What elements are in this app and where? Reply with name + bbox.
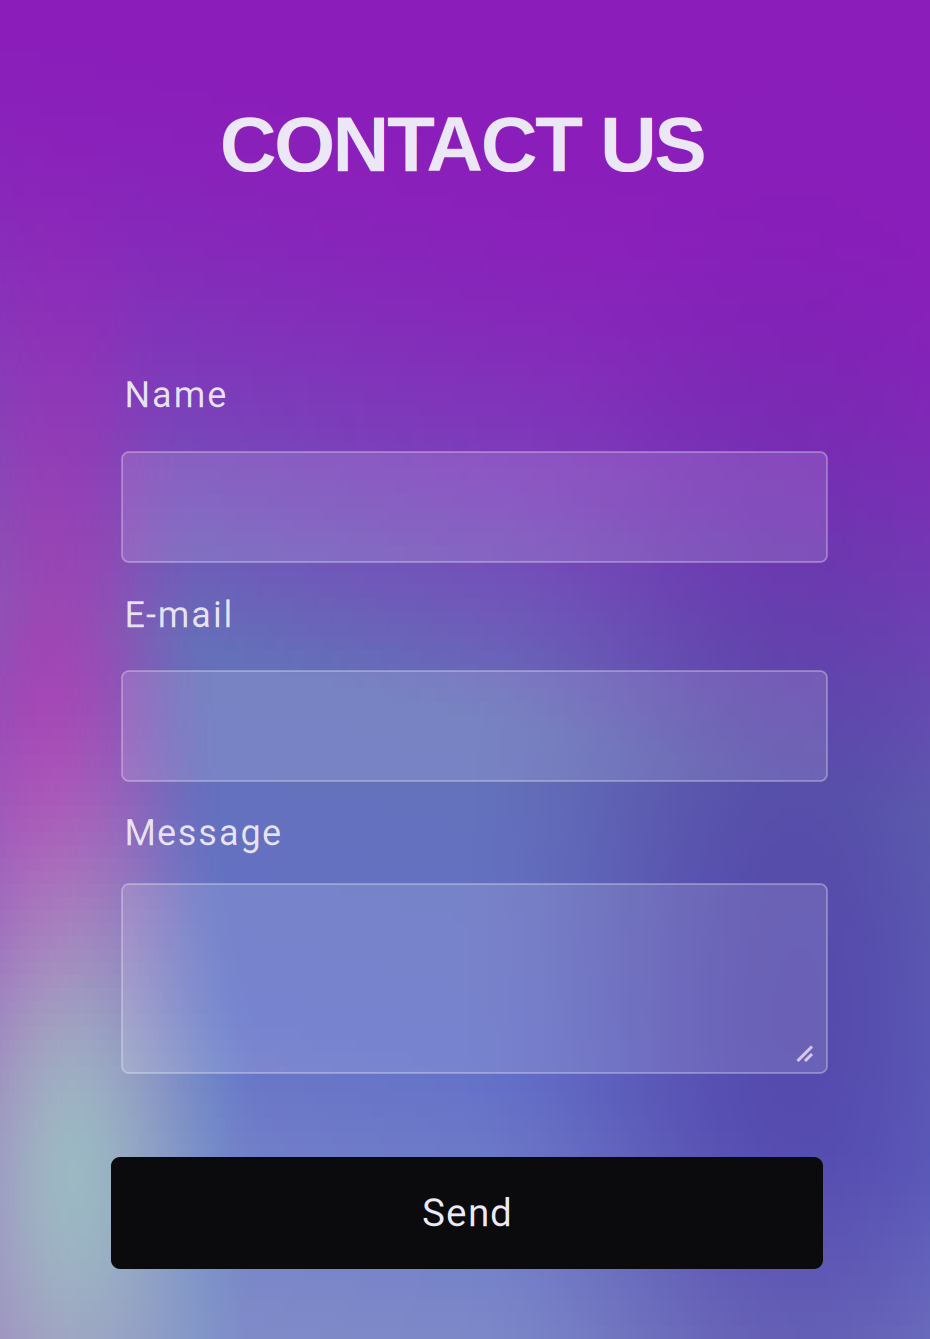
staticText: Send [422, 1190, 512, 1236]
staticText: Name [124, 374, 226, 416]
button[interactable]: Send [111, 1157, 823, 1269]
staticText: CONTACT US [220, 100, 706, 188]
staticText: Message [124, 812, 281, 854]
staticText: E-mail [124, 594, 232, 636]
